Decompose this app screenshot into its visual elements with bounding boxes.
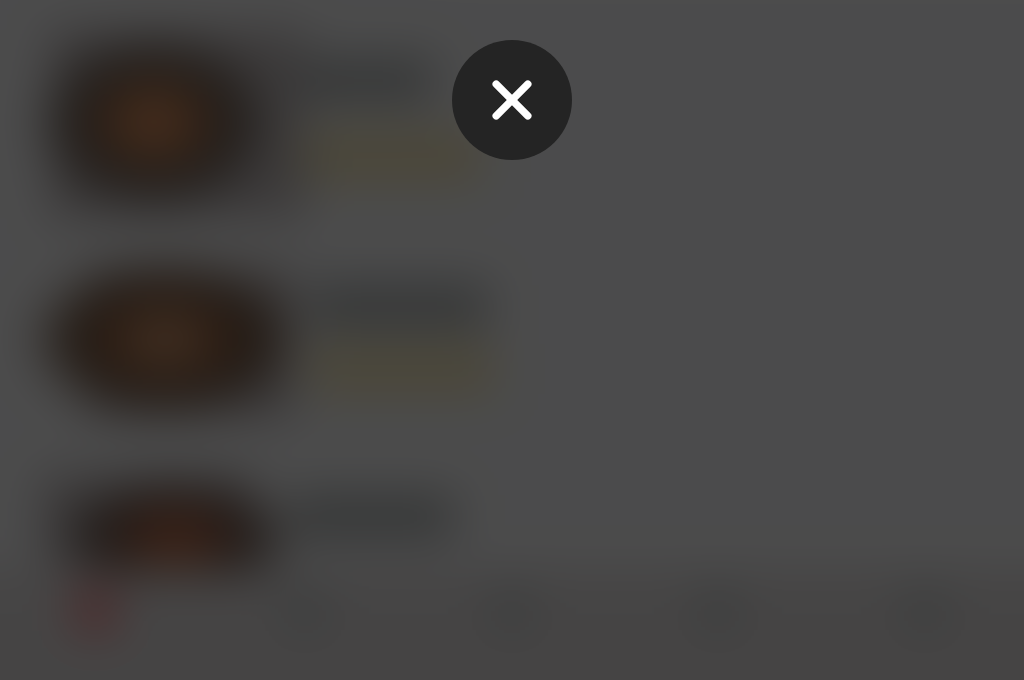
button[interactable]: Close [452, 40, 572, 160]
